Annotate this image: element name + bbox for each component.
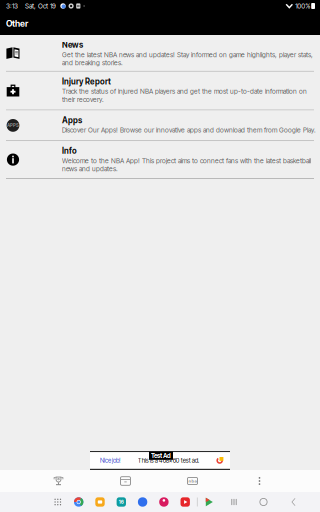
staticText: Injury Report xyxy=(62,77,111,86)
button[interactable]: YouTube xyxy=(180,497,190,507)
staticText: APPS xyxy=(7,123,19,128)
button[interactable]: Calendar xyxy=(117,497,126,507)
button[interactable]: All apps xyxy=(53,498,62,506)
button[interactable]: Info xyxy=(0,141,320,178)
button[interactable]: Teams xyxy=(159,470,226,492)
staticText: News xyxy=(62,40,83,50)
button[interactable]: Contacts xyxy=(159,497,169,507)
staticText: Sat, Oct 19 xyxy=(25,2,56,10)
button[interactable]: Nice job! xyxy=(90,451,230,470)
staticText: Apps xyxy=(62,115,82,125)
staticText: This is a 468x60 test ad. xyxy=(138,457,199,464)
staticText: Welcome to the NBA App! This project aim… xyxy=(62,157,311,173)
button[interactable]: Home xyxy=(249,494,278,510)
staticText: Nice job! xyxy=(100,457,121,464)
button[interactable]: More xyxy=(226,470,293,492)
staticText: Discover Our Apps! Browse our innovative… xyxy=(62,126,316,134)
button[interactable]: Injury Report xyxy=(0,72,320,110)
button[interactable]: Standings xyxy=(25,470,92,492)
staticText: Get the latest NBA news and updates! Sta… xyxy=(62,51,313,67)
staticText: Other xyxy=(6,18,28,29)
staticText: Track the status of injured NBA players … xyxy=(62,87,307,103)
button[interactable]: My Files xyxy=(95,497,105,507)
button[interactable]: Recent apps xyxy=(219,494,249,510)
staticText: nba xyxy=(188,478,196,484)
staticText: 3:13 xyxy=(6,2,18,10)
staticText: 16 xyxy=(119,499,124,505)
staticText: 100% xyxy=(295,2,310,10)
button[interactable]: Back xyxy=(278,494,309,510)
button[interactable]: Play Store xyxy=(205,497,214,507)
staticText: Info xyxy=(62,146,77,156)
button[interactable]: APPS xyxy=(0,110,320,140)
staticText: Test Ad xyxy=(151,452,171,459)
button[interactable]: Messages xyxy=(138,497,147,507)
button[interactable]: News xyxy=(0,35,320,71)
button[interactable]: Schedule xyxy=(92,470,159,492)
button[interactable]: Chrome xyxy=(74,497,83,507)
